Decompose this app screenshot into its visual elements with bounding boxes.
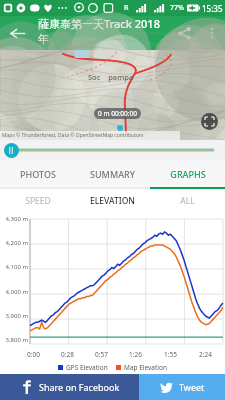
staticText: 4,000 m — [0, 288, 28, 296]
staticText: GRAPHS — [170, 168, 206, 180]
staticText: 3,800 m — [0, 336, 28, 344]
button[interactable]: Back — [0, 16, 34, 50]
staticText: 3,900 m — [0, 312, 28, 320]
button[interactable]: Share on Facebook — [0, 374, 139, 400]
staticText: 2:24 — [199, 350, 212, 359]
button[interactable]: Share — [169, 18, 199, 48]
button[interactable]: ALL — [150, 189, 225, 213]
staticText: 15:35 — [202, 3, 223, 14]
staticText: 0 m 00:00:00 — [98, 109, 137, 118]
staticText: SUMMARY — [90, 168, 135, 180]
button[interactable]: SPEED — [0, 189, 75, 213]
staticText: 4,200 m — [0, 239, 28, 247]
staticText: 0:57 — [95, 350, 108, 359]
button[interactable]: Playback position — [4, 143, 19, 158]
button[interactable]: Tweet — [139, 374, 225, 400]
button[interactable]: SUMMARY — [75, 160, 150, 187]
button[interactable]: PHOTOS — [0, 160, 75, 187]
staticText: GPS Elevation — [66, 363, 108, 372]
staticText: Tweet — [179, 381, 205, 393]
button[interactable]: GRAPHS — [150, 160, 225, 187]
staticText: 4,100 m — [0, 263, 28, 271]
staticText: Map Elevation — [124, 363, 167, 372]
staticText: Maps © Thunderforest, Data © OpenStreetM… — [2, 132, 144, 139]
staticText: Share on Facebook — [39, 381, 120, 393]
staticText: Soc pampa — [88, 72, 134, 82]
button[interactable]: ELEVATION — [75, 189, 150, 213]
staticText: PHOTOS — [20, 168, 56, 180]
staticText: ALL — [180, 195, 195, 207]
staticText: SPEED — [25, 195, 51, 207]
staticText: 1:55 — [164, 350, 177, 359]
staticText: 0:00 — [27, 350, 40, 359]
button[interactable]: More options — [199, 20, 225, 46]
staticText: 薩康泰第一天Track 2018年 — [38, 16, 169, 46]
staticText: 4,300 m — [0, 215, 28, 223]
staticText: ELEVATION — [90, 195, 135, 207]
staticText: 77% — [170, 3, 184, 13]
staticText: 1:26 — [129, 350, 142, 359]
staticText: 0:28 — [61, 350, 74, 359]
staticText: 11月1日 10:30:21 — [38, 47, 118, 50]
button[interactable]: Fullscreen — [201, 113, 218, 130]
staticText: R — [124, 3, 129, 13]
